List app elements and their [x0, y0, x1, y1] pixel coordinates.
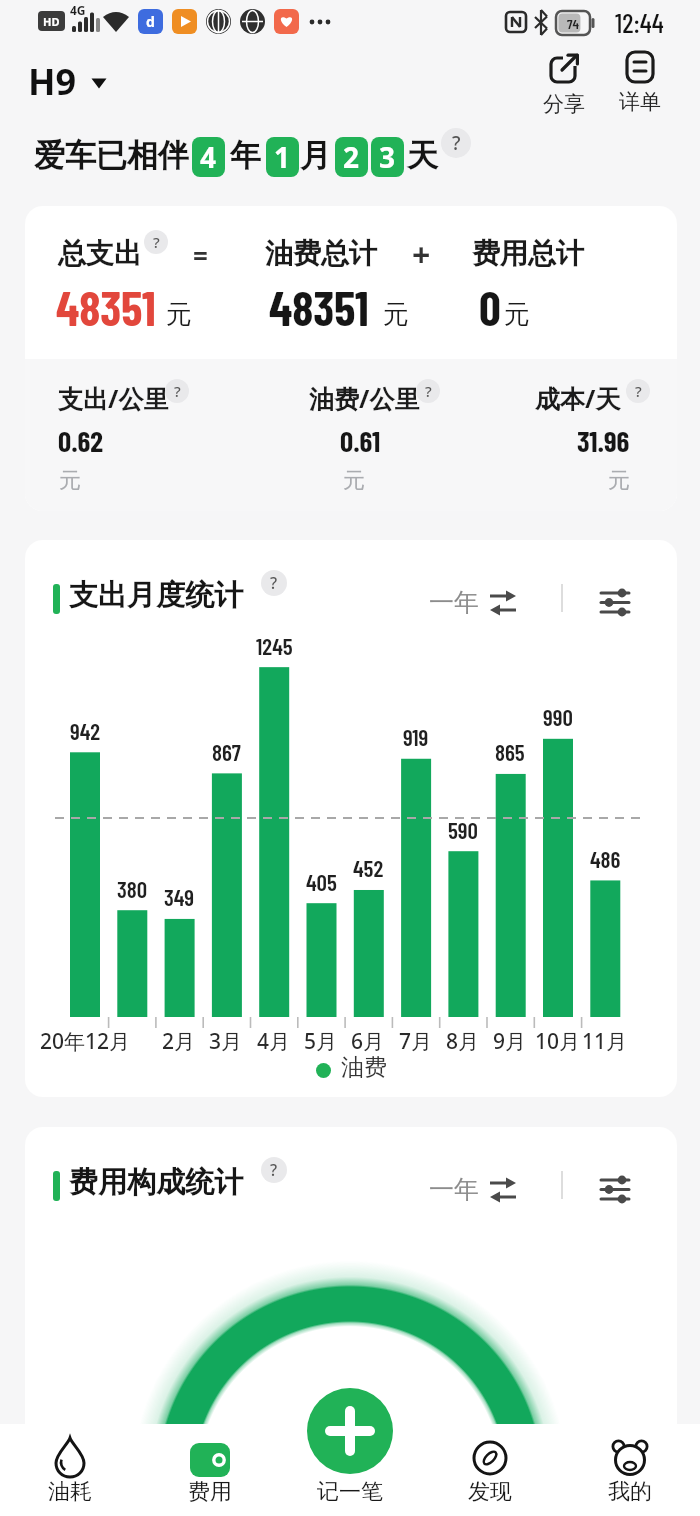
staticText: 74 — [567, 15, 579, 32]
button[interactable] — [450, 1432, 530, 1512]
staticText: 990 — [543, 703, 573, 731]
staticText: 发现 — [468, 1478, 512, 1506]
staticText: 4月 — [257, 1027, 291, 1056]
staticText: 成本/天 — [535, 381, 621, 415]
staticText: 天 — [407, 136, 438, 175]
staticText: d — [146, 12, 155, 31]
staticText: 总支出 — [58, 236, 142, 271]
staticText: 48351 — [56, 278, 156, 336]
staticText: 详单 — [619, 89, 661, 115]
staticText: 5月 — [304, 1027, 338, 1056]
staticText: = — [193, 238, 208, 273]
staticText: ? — [452, 130, 461, 156]
staticText: 0.61 — [340, 423, 381, 458]
staticText: 记一笔 — [317, 1478, 383, 1506]
staticText: 费用构成统计 — [69, 1164, 243, 1201]
staticText: 486 — [590, 845, 621, 873]
staticText: 10月 — [535, 1027, 581, 1056]
button[interactable] — [601, 1177, 631, 1203]
staticText: H9 — [28, 57, 77, 106]
staticText: ? — [425, 381, 432, 401]
staticText: HD — [43, 14, 60, 29]
staticText: 48351 — [269, 278, 369, 336]
button[interactable]: 一年 — [429, 587, 519, 618]
staticText: 3 — [379, 138, 396, 176]
staticText: + — [412, 233, 431, 277]
staticText: 元 — [608, 467, 630, 495]
staticText: 元 — [504, 298, 530, 331]
button[interactable] — [601, 590, 631, 616]
staticText: 油耗 — [48, 1478, 92, 1506]
staticText: ? — [153, 232, 160, 252]
staticText: 7月 — [399, 1027, 433, 1056]
staticText: 31.96 — [577, 423, 630, 458]
button[interactable]: 详单 — [614, 51, 666, 115]
button[interactable] — [30, 1432, 110, 1512]
button[interactable]: 分享 — [538, 53, 590, 117]
staticText: 865 — [495, 738, 525, 766]
staticText: 12:44 — [615, 6, 664, 38]
staticText: 我的 — [608, 1478, 652, 1506]
staticText: 分享 — [543, 91, 585, 117]
staticText: 3月 — [209, 1027, 243, 1056]
staticText: ? — [270, 572, 278, 594]
staticText: 费用 — [188, 1478, 232, 1506]
staticText: ? — [174, 381, 181, 401]
staticText: ? — [270, 1159, 278, 1181]
staticText: 2 — [343, 138, 360, 176]
staticText: 380 — [117, 875, 148, 903]
staticText: 452 — [353, 854, 384, 882]
staticText: 元 — [343, 467, 365, 495]
button[interactable] — [170, 1432, 250, 1512]
staticText: ? — [635, 381, 642, 401]
button[interactable] — [307, 1388, 393, 1474]
staticText: 支出/公里 — [58, 381, 169, 415]
staticText: 费用总计 — [472, 236, 584, 271]
staticText: 867 — [212, 738, 241, 766]
staticText: 一年 — [429, 587, 479, 618]
staticText: 11月 — [582, 1027, 628, 1056]
button[interactable] — [590, 1432, 670, 1512]
staticText: 爱车已相伴 — [34, 136, 189, 175]
staticText: 942 — [70, 717, 101, 745]
staticText: 一年 — [429, 1174, 479, 1205]
staticText: 919 — [403, 723, 429, 751]
staticText: 4G — [70, 2, 86, 18]
staticText: 元 — [59, 467, 81, 495]
staticText: 支出月度统计 — [69, 577, 243, 614]
button[interactable]: 一年 — [429, 1174, 519, 1205]
staticText: 年 — [230, 136, 261, 175]
staticText: 590 — [448, 816, 478, 844]
staticText: 6月 — [351, 1027, 385, 1056]
staticText: 1245 — [256, 632, 293, 660]
staticText: 20年12月 — [40, 1027, 131, 1056]
staticText: 油费总计 — [265, 236, 377, 271]
staticText: 4 — [200, 138, 217, 176]
button[interactable]: 总支出 — [25, 206, 677, 511]
staticText: 349 — [164, 883, 195, 911]
staticText: 0 — [479, 278, 501, 336]
staticText: 油费/公里 — [309, 381, 420, 415]
staticText: 1 — [274, 138, 291, 176]
staticText: 2月 — [162, 1027, 196, 1056]
staticText: 9月 — [493, 1027, 527, 1056]
staticText: 油费 — [341, 1053, 387, 1082]
staticText: 0.62 — [58, 423, 104, 458]
staticText: 8月 — [446, 1027, 480, 1056]
staticText: 405 — [306, 868, 337, 896]
staticText: 元 — [166, 298, 192, 331]
staticText: 元 — [383, 298, 409, 331]
staticText: 月 — [300, 136, 331, 175]
